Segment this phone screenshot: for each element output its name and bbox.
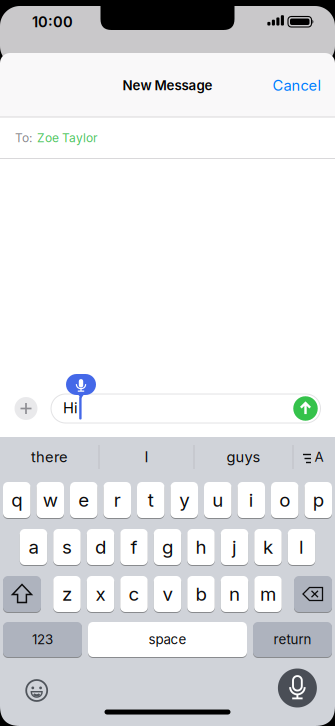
staticText: i	[249, 489, 254, 511]
button[interactable]: Apps	[14, 397, 37, 420]
button[interactable]: Delete	[294, 575, 332, 613]
staticText: there	[31, 448, 68, 466]
staticText: I	[144, 448, 148, 466]
button[interactable]: To:	[0, 117, 335, 158]
button[interactable]: y	[170, 481, 198, 519]
staticText: o	[279, 489, 290, 511]
staticText: A	[314, 449, 323, 465]
staticText: e	[78, 489, 89, 511]
button[interactable]: w	[36, 481, 64, 519]
button[interactable]: k	[254, 528, 282, 566]
button[interactable]: b	[187, 575, 215, 613]
button[interactable]: u	[204, 481, 231, 519]
button[interactable]: h	[187, 528, 215, 566]
staticText: f	[130, 536, 137, 558]
staticText: y	[179, 489, 189, 511]
staticText: n	[229, 583, 240, 605]
staticText: x	[95, 583, 105, 605]
staticText: guys	[226, 448, 260, 466]
button[interactable]: v	[154, 575, 181, 613]
staticText: z	[62, 583, 72, 605]
staticText: space	[148, 632, 186, 647]
staticText: Zoe Taylor	[37, 131, 98, 145]
button[interactable]: m	[254, 575, 282, 613]
staticText: p	[313, 489, 324, 511]
button[interactable]: Hide predictions	[297, 438, 331, 476]
button[interactable]: n	[221, 575, 248, 613]
button[interactable]: r	[103, 481, 131, 519]
staticText: New Message	[122, 78, 212, 93]
staticText: u	[212, 489, 223, 511]
button[interactable]: o	[271, 481, 298, 519]
staticText: g	[162, 536, 173, 558]
staticText: m	[260, 583, 276, 605]
button[interactable]: Dictation	[278, 668, 317, 707]
button[interactable]: i	[237, 481, 265, 519]
button[interactable]: Shift	[3, 575, 41, 613]
staticText: b	[195, 583, 206, 605]
button[interactable]: Emoji	[23, 676, 51, 704]
button[interactable]: x	[87, 575, 114, 613]
button[interactable]: I	[99, 438, 193, 476]
staticText: d	[95, 536, 106, 558]
staticText: q	[11, 489, 22, 511]
button[interactable]: Cancel	[272, 77, 321, 94]
staticText: l	[299, 536, 304, 558]
button[interactable]: space	[88, 621, 247, 658]
staticText: v	[162, 583, 172, 605]
staticText: return	[273, 632, 311, 647]
staticText: a	[28, 536, 38, 558]
button[interactable]: a	[20, 528, 47, 566]
button[interactable]: g	[154, 528, 181, 566]
button[interactable]: t	[137, 481, 164, 519]
staticText: j	[232, 536, 237, 558]
button[interactable]: d	[87, 528, 114, 566]
button[interactable]: z	[53, 575, 81, 613]
staticText: 10:00	[32, 13, 73, 31]
button[interactable]: q	[3, 481, 30, 519]
button[interactable]: s	[53, 528, 81, 566]
staticText: s	[62, 536, 72, 558]
staticText: w	[43, 489, 58, 511]
button[interactable]: Send	[293, 396, 318, 421]
staticText: k	[263, 536, 273, 558]
staticText: Cancel	[272, 77, 321, 94]
button[interactable]: f	[120, 528, 148, 566]
button[interactable]: return	[253, 621, 332, 658]
button[interactable]: p	[304, 481, 332, 519]
button[interactable]: e	[70, 481, 97, 519]
button[interactable]: l	[288, 528, 315, 566]
staticText: r	[114, 489, 121, 511]
staticText: t	[148, 489, 154, 511]
staticText: h	[195, 536, 206, 558]
button[interactable]: there	[0, 438, 98, 476]
staticText: c	[128, 583, 139, 605]
button[interactable]: 123	[3, 621, 82, 658]
button[interactable]: j	[221, 528, 248, 566]
button[interactable]: guys	[194, 438, 292, 476]
button[interactable]: c	[120, 575, 148, 613]
staticText: Hi	[63, 399, 78, 417]
staticText: To:	[15, 131, 32, 145]
staticText: 123	[32, 632, 53, 647]
